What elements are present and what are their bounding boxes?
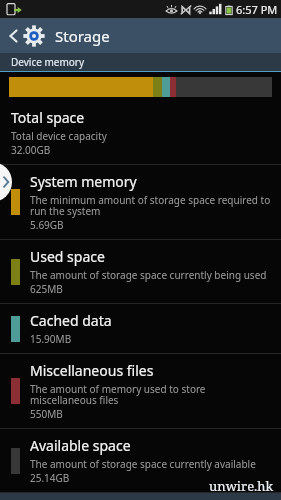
staticText: The minimum amount of storage space requ… xyxy=(30,193,271,218)
staticText: The amount of storage space currently be… xyxy=(30,268,267,282)
staticText: Cached data xyxy=(30,311,112,330)
staticText: Available space xyxy=(30,436,131,455)
staticText: 550MB xyxy=(30,407,63,421)
staticText: Used space xyxy=(30,247,105,266)
button[interactable]: Back xyxy=(6,24,21,48)
staticText: The amount of storage space currently av… xyxy=(30,457,256,471)
button[interactable]: Cached data xyxy=(0,304,281,353)
staticText: 25.14GB xyxy=(30,471,70,485)
staticText: 6:57 PM xyxy=(236,2,278,17)
staticText: Device memory xyxy=(11,55,85,69)
staticText: Storage xyxy=(55,26,110,46)
staticText: The amount of memory used to store misce… xyxy=(30,382,271,407)
staticText: Total space xyxy=(11,108,85,127)
button[interactable]: Total space xyxy=(0,101,281,164)
button[interactable]: System memory xyxy=(0,165,281,239)
staticText: Miscellaneous files xyxy=(30,361,154,380)
staticText: System memory xyxy=(30,172,137,191)
staticText: 15.90MB xyxy=(30,332,72,346)
staticText: 5.69GB xyxy=(30,218,64,232)
button[interactable]: Miscellaneous files xyxy=(0,354,281,428)
button[interactable]: Used space xyxy=(0,240,281,303)
staticText: 32.00GB xyxy=(11,143,51,157)
staticText: 625MB xyxy=(30,282,63,296)
button[interactable]: Available space xyxy=(0,429,281,492)
staticText: unwire.hk xyxy=(209,477,274,495)
staticText: Total device capacity xyxy=(11,129,107,143)
button[interactable]: Open side panel xyxy=(0,162,13,202)
button[interactable]: Back xyxy=(0,18,281,53)
